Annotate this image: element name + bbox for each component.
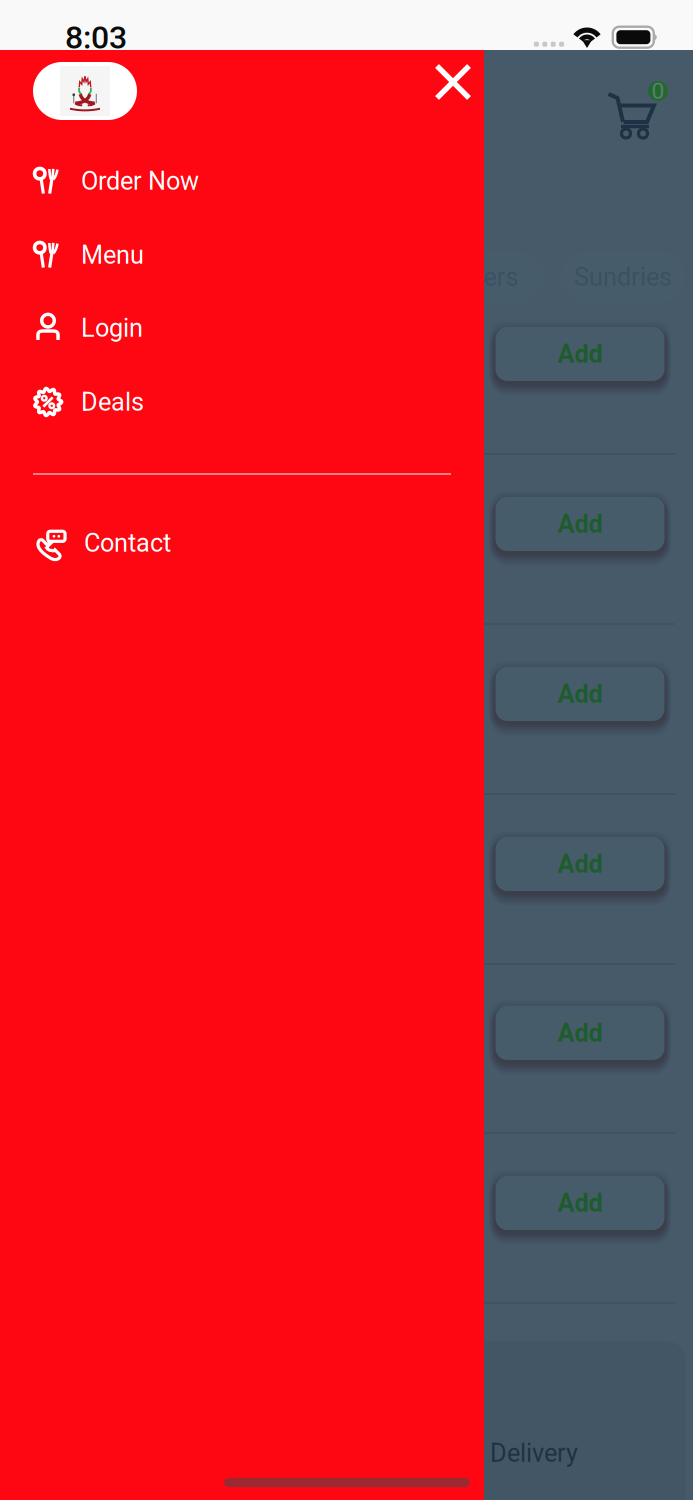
button[interactable]: Delivery <box>474 1430 594 1476</box>
button[interactable]: Add <box>495 667 664 721</box>
staticText: Add <box>557 339 602 369</box>
staticText: Menu <box>81 240 144 270</box>
staticText: Login <box>81 313 143 343</box>
button[interactable]: Add <box>495 1176 664 1230</box>
button[interactable]: Add <box>495 327 664 381</box>
staticText: 0 <box>651 78 664 104</box>
staticText: Contact <box>84 528 171 558</box>
button[interactable]: Order Now <box>0 144 484 217</box>
button[interactable]: Cart <box>607 90 655 140</box>
button[interactable]: Burgers <box>407 251 543 303</box>
staticText: Sundries <box>574 262 672 292</box>
staticText: Burgers <box>431 262 518 292</box>
staticText: Add <box>557 679 602 709</box>
button[interactable]: Sundries <box>561 251 684 303</box>
staticText: Delivery <box>490 1438 578 1468</box>
button[interactable]: Login <box>0 291 484 364</box>
button[interactable]: Add <box>495 497 664 551</box>
button[interactable]: Contact <box>0 506 484 579</box>
staticText: 8:03 <box>65 19 127 56</box>
staticText: Add <box>557 509 602 539</box>
staticText: Add <box>557 849 602 879</box>
staticText: Order Now <box>81 166 199 196</box>
staticText: Deals <box>81 387 144 417</box>
button[interactable]: Menu <box>0 218 484 291</box>
staticText: Add <box>557 1188 602 1218</box>
button[interactable]: Add <box>495 1006 664 1060</box>
staticText: Add <box>557 1018 602 1048</box>
button[interactable]: Deals <box>0 365 484 438</box>
button[interactable]: Close menu <box>422 51 484 113</box>
button[interactable]: Add <box>495 837 664 891</box>
